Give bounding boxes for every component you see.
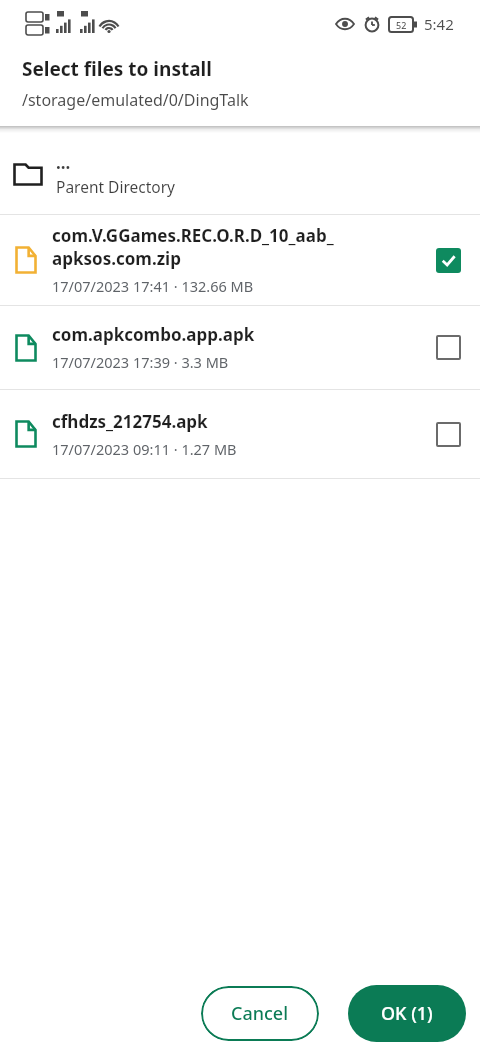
staticText: 5:42 [424, 14, 454, 34]
staticText: 17/07/2023 17:39 · 3.3 MB [52, 352, 229, 372]
button[interactable]: com.V.GGames.REC.O.R.D_10_aab_ apksos.co… [0, 215, 480, 305]
button[interactable]: cfhdzs_212754.apk [0, 390, 480, 478]
staticText: Parent Directory [56, 176, 175, 197]
staticText: OK (1) [381, 1001, 433, 1026]
button[interactable]: Not selected [416, 390, 480, 478]
staticText: cfhdzs_212754.apk [52, 410, 208, 433]
staticText: /storage/emulated/0/DingTalk [22, 89, 249, 111]
staticText: com.apkcombo.app.apk [52, 323, 255, 346]
button[interactable]: Not selected [416, 306, 480, 389]
button[interactable]: Selected [416, 215, 480, 305]
button[interactable]: OK (1) [348, 985, 466, 1042]
staticText: com.V.GGames.REC.O.R.D_10_aab_ apksos.co… [52, 224, 334, 270]
staticText: 52 [396, 19, 407, 31]
button[interactable]: com.apkcombo.app.apk [0, 306, 480, 389]
button[interactable]: Cancel [201, 986, 319, 1041]
staticText: Select files to install [22, 56, 212, 82]
staticText: ... [56, 151, 71, 174]
button[interactable]: ... [0, 133, 480, 214]
staticText: 17/07/2023 09:11 · 1.27 MB [52, 439, 237, 459]
staticText: 17/07/2023 17:41 · 132.66 MB [52, 276, 254, 296]
staticText: Cancel [231, 1001, 289, 1026]
